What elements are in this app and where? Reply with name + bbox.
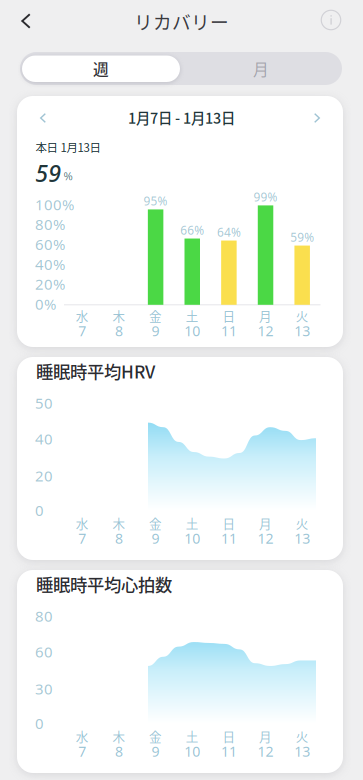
staticText: 40%	[35, 254, 65, 274]
staticText: 12	[257, 321, 273, 340]
staticText: 水	[76, 514, 89, 532]
staticText: 10	[184, 742, 200, 761]
staticText: 11	[221, 742, 237, 761]
staticText: %	[63, 168, 72, 184]
staticText: 月	[259, 727, 272, 745]
staticText: 13	[294, 321, 310, 340]
button[interactable]: 週	[0, 0, 158, 26]
staticText: 59	[35, 157, 61, 189]
staticText: 7	[78, 742, 86, 761]
staticText: 土	[186, 514, 199, 532]
staticText: 日	[222, 306, 235, 324]
staticText: 木	[112, 727, 125, 745]
staticText: 9	[152, 529, 160, 548]
staticText: 10	[184, 529, 200, 548]
staticText: 金	[149, 306, 162, 324]
staticText: 10	[184, 321, 200, 340]
staticText: 本日 1月13日	[35, 139, 100, 155]
staticText: 週	[93, 57, 109, 80]
staticText: 13	[294, 742, 310, 761]
staticText: 9	[152, 321, 160, 340]
staticText: 7	[78, 321, 86, 340]
staticText: 日	[222, 514, 235, 532]
staticText: 50	[35, 393, 53, 413]
staticText: 20	[35, 466, 53, 486]
staticText: 日	[222, 727, 235, 745]
staticText: 水	[76, 306, 89, 324]
staticText: 0	[35, 500, 44, 520]
staticText: 100%	[35, 194, 74, 214]
staticText: リカバリー	[134, 7, 229, 34]
staticText: 7	[78, 529, 86, 548]
staticText: 8	[115, 529, 123, 548]
staticText: 8	[115, 321, 123, 340]
staticText: 水	[76, 727, 89, 745]
staticText: 11	[221, 321, 237, 340]
staticText: 11	[221, 529, 237, 548]
staticText: 月	[259, 514, 272, 532]
staticText: 睡眠時平均心拍数	[36, 571, 172, 597]
staticText: 1月7日 - 1月13日	[128, 107, 235, 128]
staticText: 木	[112, 306, 125, 324]
staticText: 40	[35, 429, 53, 449]
staticText: 64%	[217, 224, 241, 240]
staticText: 金	[149, 514, 162, 532]
staticText: 8	[115, 742, 123, 761]
staticText: 火	[296, 727, 309, 745]
staticText: 月	[259, 306, 272, 324]
staticText: 13	[294, 529, 310, 548]
button[interactable]: 月	[0, 0, 158, 26]
staticText: 土	[186, 306, 199, 324]
staticText: 12	[257, 529, 273, 548]
staticText: 0%	[35, 294, 56, 314]
staticText: 睡眠時平均HRV	[36, 358, 155, 384]
staticText: 12	[257, 742, 273, 761]
staticText: 80%	[35, 214, 65, 234]
staticText: 66%	[180, 222, 204, 238]
staticText: 59%	[290, 229, 314, 245]
staticText: 0	[35, 713, 44, 733]
button[interactable]: 戻る	[0, 0, 28, 28]
staticText: 60	[35, 642, 53, 662]
staticText: 火	[296, 514, 309, 532]
staticText: 60%	[35, 234, 65, 254]
staticText: 木	[112, 514, 125, 532]
staticText: 20%	[35, 274, 65, 294]
staticText: 9	[152, 742, 160, 761]
staticText: 火	[296, 306, 309, 324]
staticText: 95%	[144, 193, 168, 209]
staticText: 土	[186, 727, 199, 745]
staticText: 金	[149, 727, 162, 745]
staticText: 99%	[253, 189, 277, 205]
staticText: 月	[253, 57, 269, 80]
staticText: 30	[35, 679, 53, 699]
staticText: 80	[35, 606, 53, 626]
